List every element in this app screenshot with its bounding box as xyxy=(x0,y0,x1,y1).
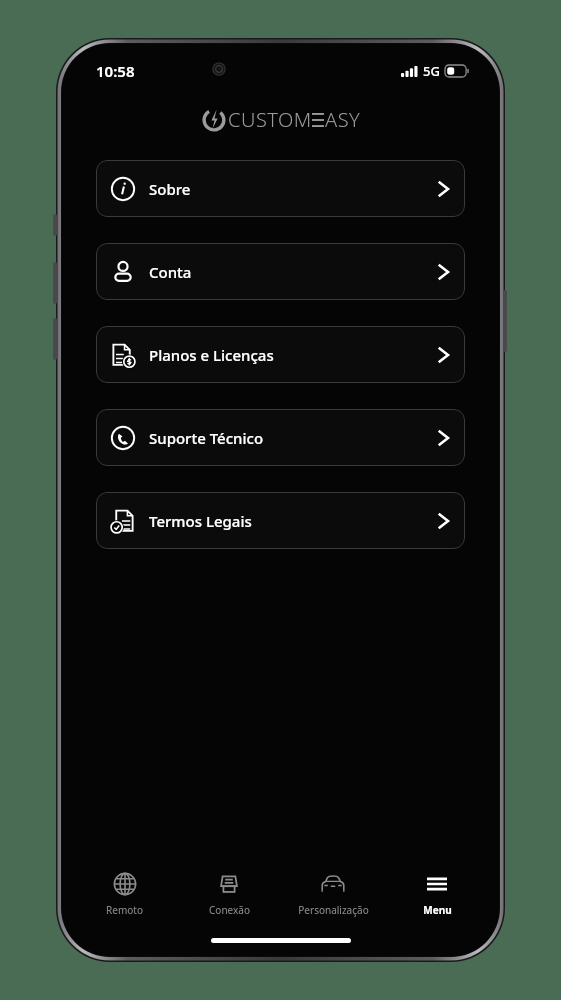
staticText: 5G xyxy=(423,62,440,80)
button[interactable]: Conta xyxy=(96,243,465,300)
staticText: Termos Legais xyxy=(149,511,436,531)
staticText: Suporte Técnico xyxy=(149,428,436,448)
button[interactable]: Conexão xyxy=(177,858,281,930)
button[interactable]: Menu xyxy=(385,858,489,930)
button[interactable]: Planos e Licenças xyxy=(96,326,465,383)
button[interactable]: Sobre xyxy=(96,160,465,217)
staticText: Planos e Licenças xyxy=(149,345,436,365)
staticText: Conexão xyxy=(209,903,250,917)
staticText: Menu xyxy=(423,903,452,917)
staticText: CUSTOM xyxy=(228,106,312,133)
staticText: Remoto xyxy=(106,903,143,917)
button[interactable]: Remoto xyxy=(72,858,177,930)
button[interactable]: Personalização xyxy=(281,858,385,930)
staticText: Conta xyxy=(149,262,436,282)
button[interactable]: Termos Legais xyxy=(96,492,465,549)
staticText: 10:58 xyxy=(96,61,135,81)
staticText: Personalização xyxy=(298,903,369,917)
button[interactable]: Suporte Técnico xyxy=(96,409,465,466)
staticText: Sobre xyxy=(149,179,436,199)
staticText: ASY xyxy=(325,106,361,133)
